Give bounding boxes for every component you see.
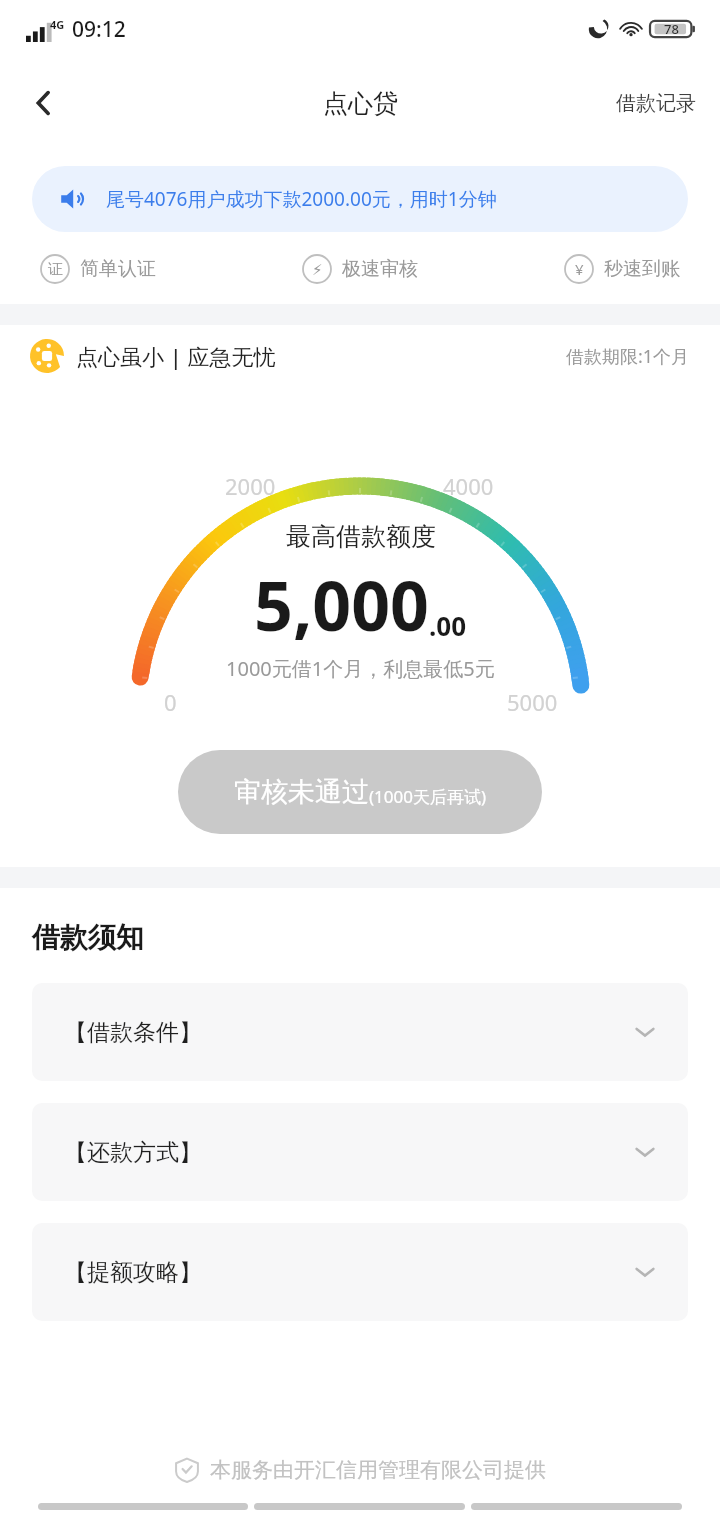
staticText: 点心贷 bbox=[323, 88, 398, 119]
staticText: 秒速到账 bbox=[604, 257, 680, 281]
staticText: 【提额攻略】 bbox=[64, 1258, 202, 1287]
staticText: 借款期限:1个月 bbox=[566, 344, 690, 369]
staticText: 尾号4076用户成功下款2000.00元，用时1分钟 bbox=[106, 186, 497, 212]
staticText: 【借款条件】 bbox=[64, 1018, 202, 1047]
staticText: ¥ bbox=[575, 259, 584, 279]
staticText: 78 bbox=[664, 20, 679, 38]
staticText: 2000 bbox=[225, 471, 276, 501]
staticText: ⚡ bbox=[312, 261, 323, 278]
staticText: 5,000 bbox=[254, 558, 429, 651]
staticText: 证 bbox=[48, 260, 63, 279]
button[interactable]: Back bbox=[16, 75, 72, 131]
staticText: 最高借款额度 bbox=[286, 521, 436, 552]
staticText: 0 bbox=[164, 687, 177, 717]
staticText: 简单认证 bbox=[80, 257, 156, 281]
staticText: 【还款方式】 bbox=[64, 1138, 202, 1167]
staticText: 09:12 bbox=[72, 15, 126, 44]
staticText: 借款须知 bbox=[32, 920, 144, 955]
staticText: 1000元借1个月，利息最低5元 bbox=[226, 655, 495, 682]
staticText: 本服务由开汇信用管理有限公司提供 bbox=[210, 1457, 546, 1483]
staticText: .00 bbox=[429, 608, 467, 643]
staticText: 借款记录 bbox=[616, 91, 696, 116]
staticText: 5000 bbox=[507, 687, 558, 717]
staticText: 4G bbox=[50, 17, 65, 32]
staticText: 4000 bbox=[443, 471, 494, 501]
button[interactable]: 审核未通过 bbox=[178, 750, 542, 834]
staticText: 点心虽小 | 应急无忧 bbox=[76, 341, 276, 371]
staticText: 审核未通过 bbox=[234, 775, 369, 809]
button[interactable]: 【提额攻略】 bbox=[32, 1223, 688, 1321]
staticText: (1000天后再试) bbox=[369, 785, 487, 808]
button[interactable]: 【还款方式】 bbox=[32, 1103, 688, 1201]
staticText: 极速审核 bbox=[342, 257, 418, 281]
button[interactable]: 尾号4076用户成功下款2000.00元，用时1分钟 bbox=[32, 166, 688, 232]
button[interactable]: 【借款条件】 bbox=[32, 983, 688, 1081]
button[interactable]: 借款记录 bbox=[616, 91, 696, 116]
